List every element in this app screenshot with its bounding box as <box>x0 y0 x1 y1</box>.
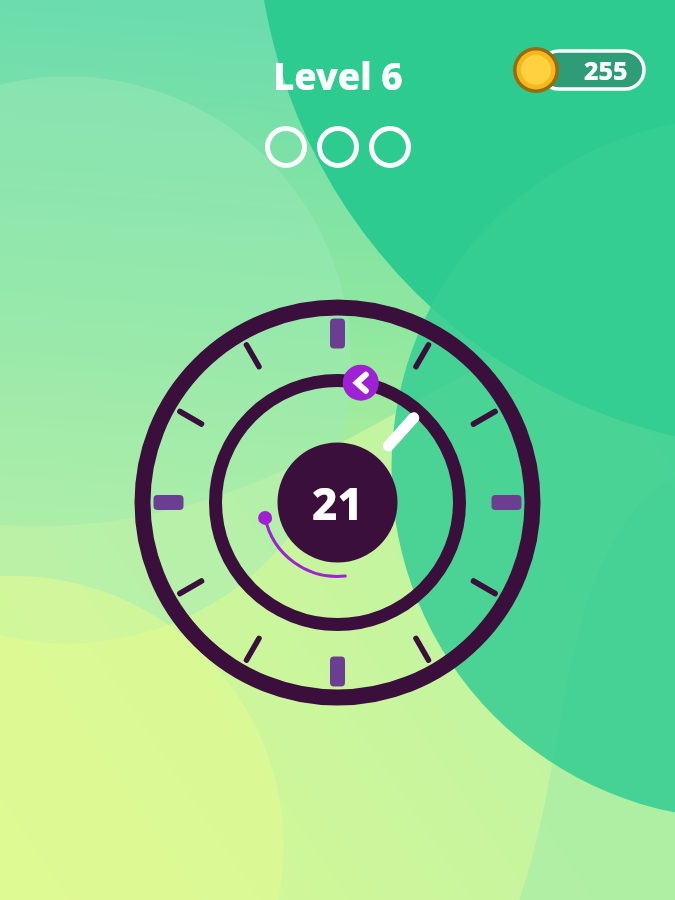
staticText: 21 <box>312 473 363 533</box>
button[interactable]: Game dial, 21 seconds <box>120 285 555 720</box>
button[interactable]: Coins: 255 <box>512 48 646 92</box>
staticText: Level 6 <box>273 50 403 100</box>
staticText: 255 <box>584 53 628 87</box>
